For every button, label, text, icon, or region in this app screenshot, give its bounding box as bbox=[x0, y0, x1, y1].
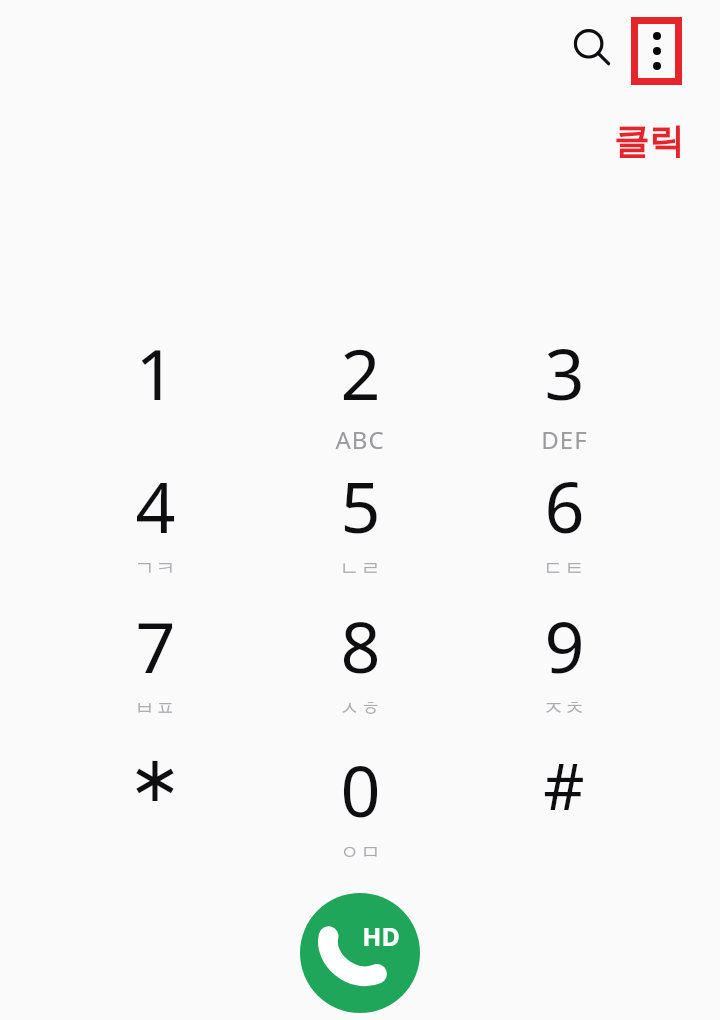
button[interactable]: 0 bbox=[260, 742, 460, 874]
button[interactable]: Search bbox=[566, 22, 618, 74]
staticText: 4 bbox=[135, 458, 176, 553]
staticText: 1 bbox=[135, 325, 176, 420]
staticText: HD bbox=[362, 919, 400, 953]
staticText: 7 bbox=[135, 598, 176, 693]
button[interactable]: More options bbox=[631, 17, 682, 85]
staticText: # bbox=[543, 742, 585, 829]
button[interactable]: 2 bbox=[260, 325, 460, 457]
staticText: 2 bbox=[340, 325, 381, 420]
button[interactable]: 9 bbox=[464, 598, 664, 730]
button[interactable]: 3 bbox=[464, 325, 664, 457]
staticText: 3 bbox=[544, 325, 585, 420]
button[interactable]: Call bbox=[300, 893, 420, 1013]
staticText: ㅇㅁ bbox=[339, 840, 381, 865]
staticText: DEF bbox=[541, 423, 588, 456]
button[interactable]: 1 bbox=[55, 325, 255, 457]
staticText: ㄷㅌ bbox=[543, 556, 585, 581]
staticText: ㅂㅍ bbox=[134, 696, 176, 721]
staticText: 8 bbox=[340, 598, 381, 693]
staticText: ABC bbox=[335, 423, 385, 456]
staticText: ㅈㅊ bbox=[543, 696, 585, 721]
staticText: ㅅㅎ bbox=[339, 696, 381, 721]
staticText: 클릭 bbox=[614, 119, 684, 163]
staticText: 0 bbox=[340, 742, 381, 837]
button[interactable]: 4 bbox=[55, 458, 255, 590]
button[interactable]: 8 bbox=[260, 598, 460, 730]
staticText: ∗ bbox=[128, 742, 182, 817]
button[interactable]: ∗ bbox=[55, 742, 255, 874]
button[interactable]: 5 bbox=[260, 458, 460, 590]
staticText: 6 bbox=[544, 458, 585, 553]
button[interactable]: 6 bbox=[464, 458, 664, 590]
button[interactable]: # bbox=[464, 742, 664, 874]
staticText: ㄱㅋ bbox=[134, 556, 176, 581]
staticText: ㄴㄹ bbox=[339, 556, 381, 581]
button[interactable]: 7 bbox=[55, 598, 255, 730]
staticText: 9 bbox=[544, 598, 585, 693]
staticText: 5 bbox=[340, 458, 381, 553]
